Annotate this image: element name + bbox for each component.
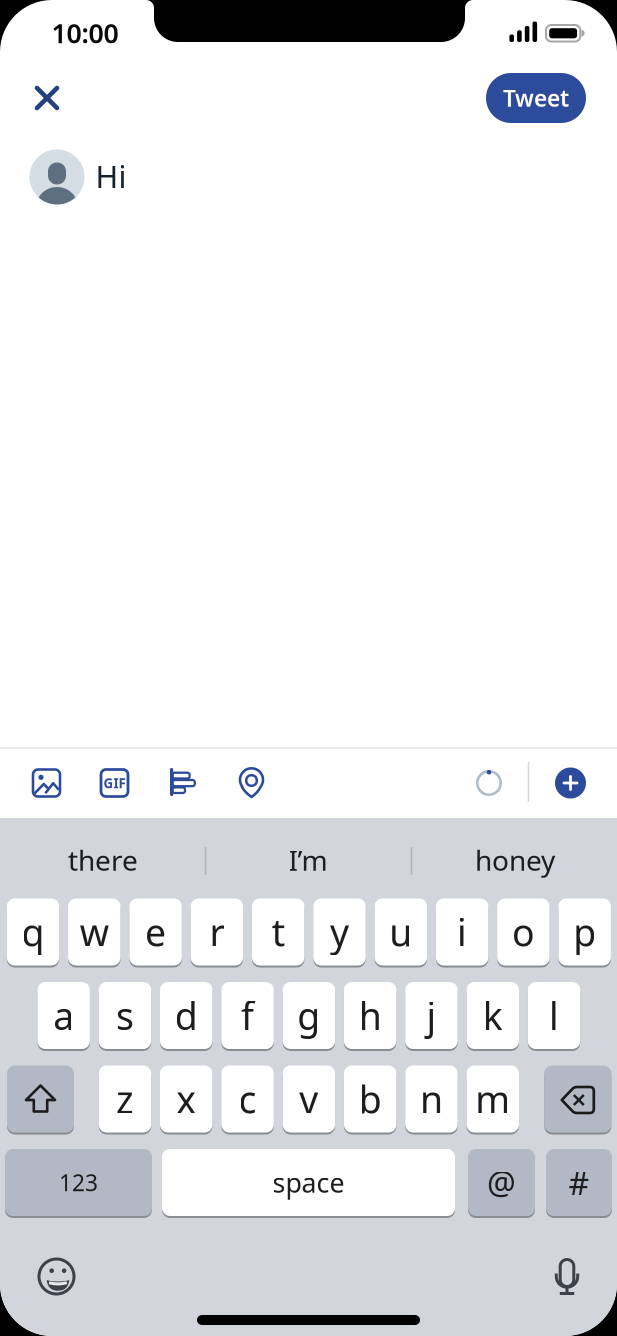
button[interactable]: # [546, 1147, 612, 1217]
staticText: r [209, 907, 224, 957]
staticText: p [573, 907, 596, 957]
button[interactable]: m [466, 1064, 519, 1134]
button[interactable] [236, 767, 266, 799]
button[interactable] [34, 1254, 78, 1298]
button[interactable]: l [528, 980, 580, 1050]
staticText: u [389, 907, 412, 957]
staticText: I’m [288, 841, 327, 879]
button[interactable]: w [68, 897, 120, 967]
button[interactable]: d [160, 980, 212, 1050]
staticText: b [359, 1074, 382, 1124]
button[interactable] [555, 767, 586, 798]
staticText: g [297, 991, 320, 1040]
button[interactable]: z [99, 1064, 151, 1134]
staticText: honey [475, 841, 555, 879]
button[interactable]: j [405, 980, 458, 1050]
button[interactable]: u [374, 897, 427, 967]
button[interactable]: h [344, 980, 396, 1050]
staticText: x [176, 1074, 196, 1124]
button[interactable]: v [283, 1064, 335, 1134]
button[interactable]: i [436, 897, 488, 967]
staticText: l [549, 991, 559, 1040]
staticText: v [299, 1074, 318, 1124]
button[interactable] [31, 768, 61, 798]
staticText: z [116, 1074, 134, 1124]
staticText: # [568, 1161, 589, 1204]
staticText: h [359, 991, 382, 1040]
button[interactable]: t [252, 897, 304, 967]
button[interactable] [168, 768, 198, 798]
button[interactable]: there [3, 825, 203, 895]
staticText: 10:00 [51, 15, 118, 51]
staticText: there [68, 841, 138, 879]
staticText: o [512, 907, 535, 957]
button[interactable]: a [37, 980, 90, 1050]
staticText: d [175, 991, 198, 1040]
button[interactable]: Tweet [486, 73, 586, 123]
button[interactable]: s [99, 980, 151, 1050]
staticText: a [53, 991, 74, 1040]
staticText: m [475, 1074, 510, 1124]
button[interactable]: c [221, 1064, 274, 1134]
button[interactable]: 123 [5, 1147, 152, 1217]
staticText: n [420, 1074, 443, 1124]
button[interactable] [544, 1064, 611, 1134]
staticText: y [330, 907, 349, 957]
staticText: GIF [103, 774, 125, 792]
button[interactable]: r [191, 897, 243, 967]
staticText: e [145, 907, 166, 957]
button[interactable]: o [497, 897, 550, 967]
staticText: Tweet [503, 83, 569, 113]
staticText: @ [487, 1161, 516, 1204]
staticText: j [426, 991, 436, 1040]
staticText: k [483, 991, 503, 1040]
button[interactable]: f [221, 980, 274, 1050]
button[interactable]: @ [468, 1147, 535, 1217]
button[interactable]: I’m [208, 825, 408, 895]
button[interactable]: n [405, 1064, 458, 1134]
staticText: w [80, 907, 109, 957]
button[interactable] [25, 76, 69, 120]
staticText: c [239, 1074, 257, 1124]
button[interactable]: x [160, 1064, 212, 1134]
button[interactable]: honey [415, 825, 615, 895]
button[interactable]: GIF [99, 768, 129, 798]
staticText: t [272, 907, 285, 957]
staticText: s [116, 991, 134, 1040]
button[interactable]: k [466, 980, 519, 1050]
button[interactable] [545, 1255, 589, 1299]
button[interactable]: q [7, 897, 59, 967]
button[interactable]: b [344, 1064, 396, 1134]
staticText: i [457, 907, 467, 957]
staticText: Hi [95, 156, 126, 196]
button[interactable]: space [162, 1147, 455, 1217]
button[interactable]: g [283, 980, 335, 1050]
staticText: q [21, 907, 44, 957]
button[interactable] [7, 1064, 74, 1134]
staticText: 123 [59, 1167, 98, 1197]
button[interactable]: y [313, 897, 366, 967]
staticText: f [241, 991, 254, 1040]
button[interactable]: p [558, 897, 611, 967]
button[interactable]: e [129, 897, 182, 967]
staticText: space [272, 1165, 344, 1200]
